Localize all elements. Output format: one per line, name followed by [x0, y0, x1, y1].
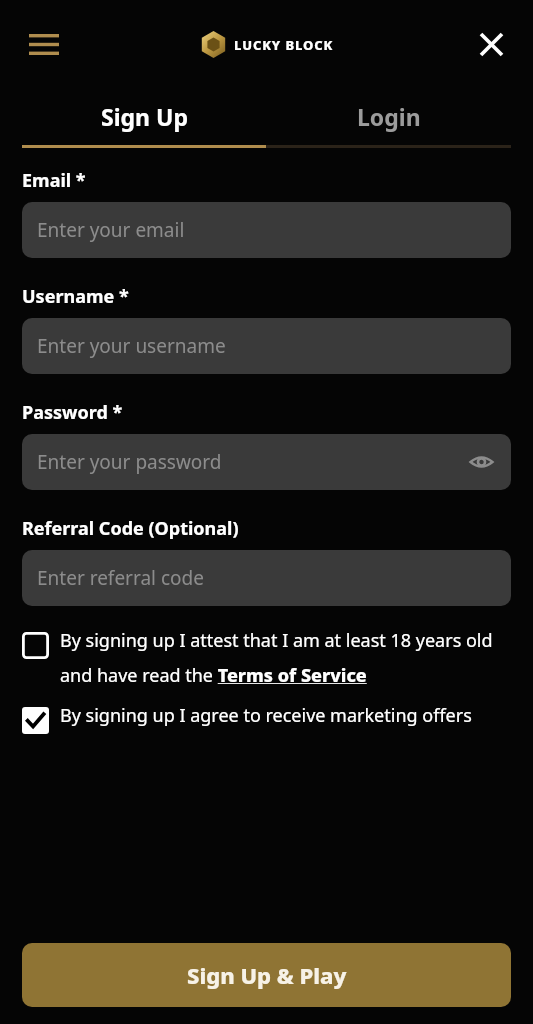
- button[interactable]: Unchecked: [22, 632, 49, 659]
- staticText: Username *: [22, 284, 129, 309]
- staticText: Enter your email: [37, 217, 185, 243]
- staticText: Enter your username: [37, 333, 226, 359]
- button[interactable]: Checked: [22, 703, 511, 734]
- button[interactable]: Show password: [461, 442, 501, 482]
- staticText: Sign Up & Play: [187, 960, 347, 990]
- staticText: By signing up I agree to receive marketi…: [60, 703, 472, 728]
- staticText: By signing up I attest that I am at leas…: [60, 628, 511, 687]
- button[interactable]: Sign Up & Play: [22, 943, 511, 1007]
- button[interactable]: Menu: [20, 20, 68, 68]
- staticText: LUCKY BLOCK: [234, 36, 334, 54]
- button[interactable]: Enter your email: [22, 202, 511, 258]
- staticText: Enter your password: [37, 449, 222, 475]
- button[interactable]: Enter referral code: [22, 550, 511, 606]
- button[interactable]: Login: [266, 88, 511, 145]
- button[interactable]: Enter your password: [22, 434, 511, 490]
- staticText: Email *: [22, 168, 86, 193]
- staticText: Enter referral code: [37, 565, 204, 591]
- button[interactable]: LUCKY BLOCK: [200, 31, 334, 58]
- button[interactable]: Checked: [22, 707, 49, 734]
- button[interactable]: Sign Up: [22, 88, 266, 145]
- staticText: Sign Up: [101, 101, 188, 132]
- staticText: Login: [357, 101, 421, 132]
- button[interactable]: Close: [467, 20, 515, 68]
- button[interactable]: Unchecked: [22, 628, 511, 687]
- staticText: Referral Code (Optional): [22, 516, 239, 541]
- button[interactable]: Enter your username: [22, 318, 511, 374]
- staticText: Password *: [22, 400, 123, 425]
